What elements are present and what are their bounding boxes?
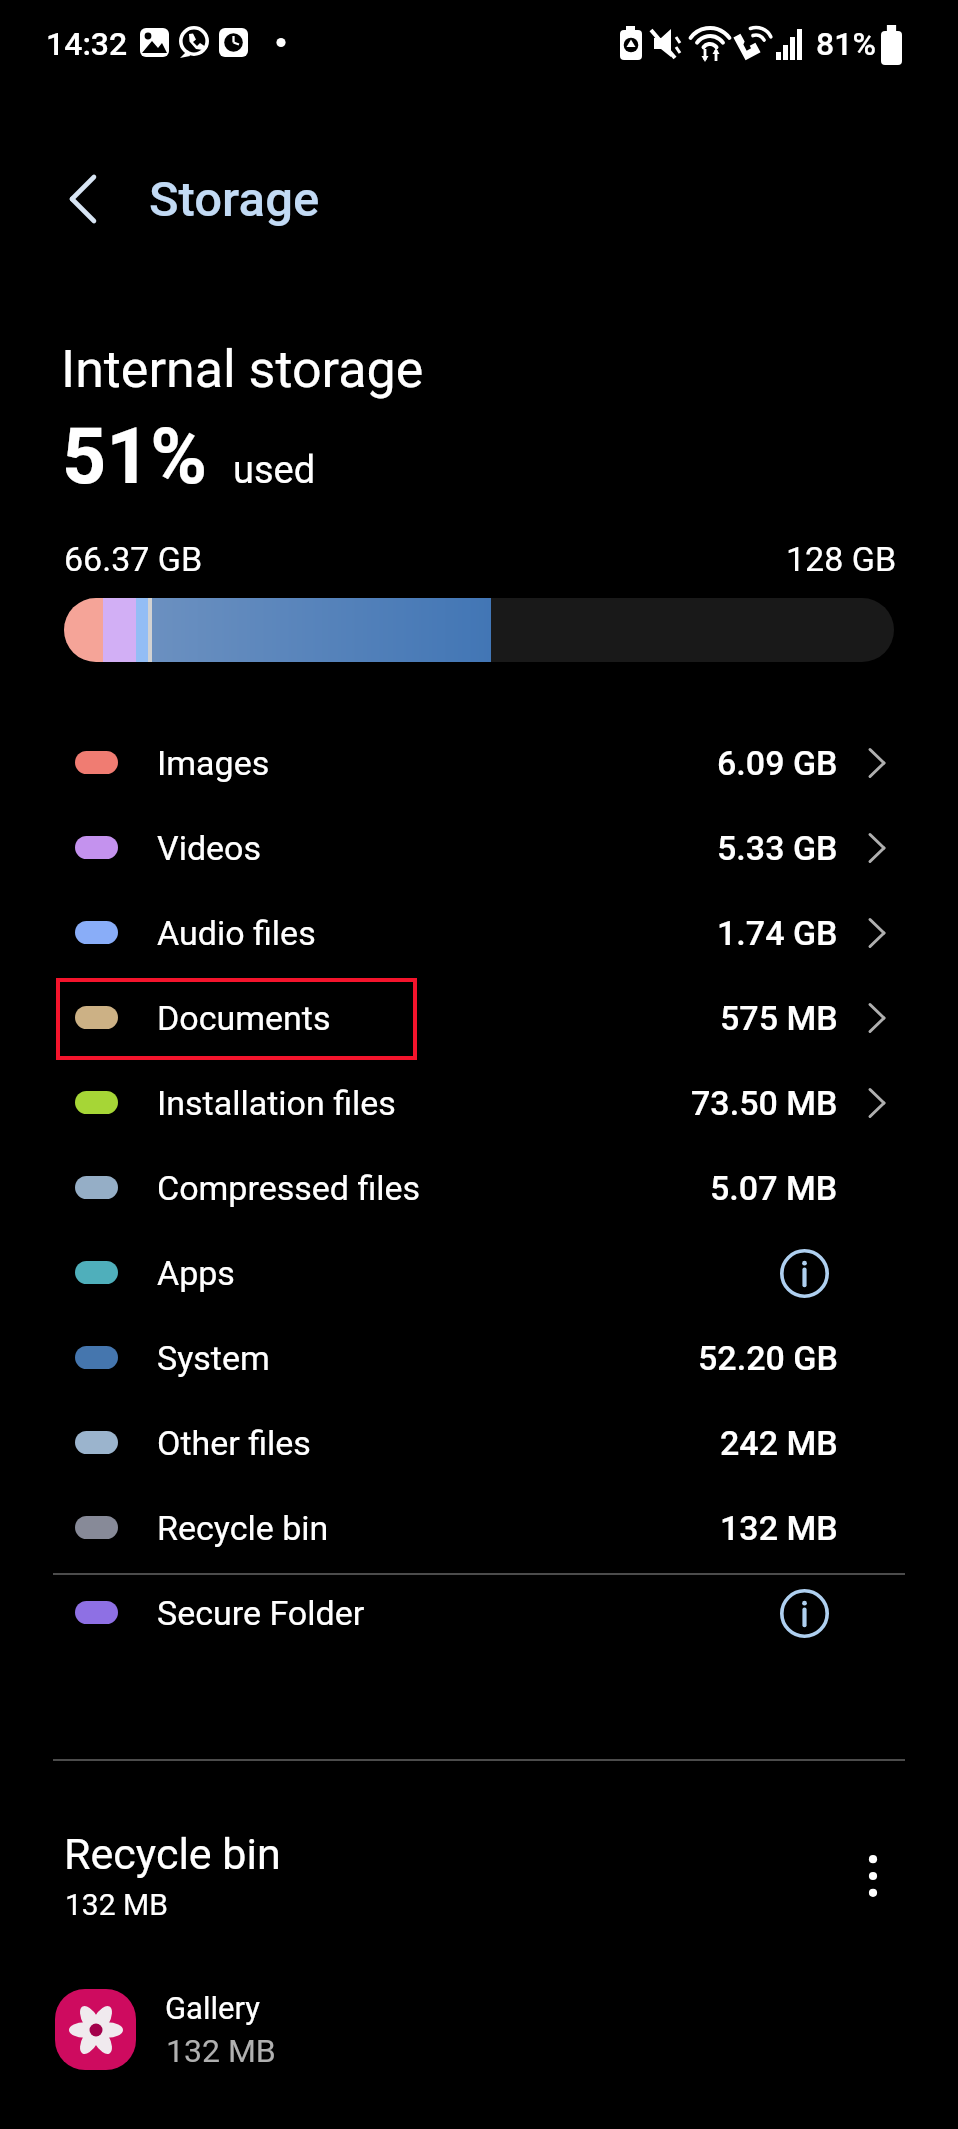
staticText: Apps [157,1253,235,1293]
staticText: Audio files [157,913,316,953]
button[interactable]: Recycle bin [0,1485,958,1570]
staticText: 73.50 MB [691,1083,838,1123]
staticText: 66.37 GB [64,539,203,579]
button[interactable]: Secure Folder [0,1570,958,1655]
staticText: 132 MB [166,2032,276,2070]
button[interactable]: Apps [0,1230,958,1315]
staticText: Internal storage [61,339,424,400]
button[interactable]: Other files [0,1400,958,1485]
staticText: 6.09 GB [717,743,838,783]
staticText: used [233,448,316,493]
button[interactable]: Audio files [0,890,958,975]
staticText: 242 MB [720,1423,838,1463]
staticText: 128 GB [786,539,897,579]
staticText: 81% [816,25,876,63]
staticText: 5.33 GB [717,828,838,868]
button[interactable]: More information about Secure Folder [773,1582,835,1644]
staticText: 1.74 GB [717,913,838,953]
button[interactable]: Documents [0,975,958,1060]
staticText: 51% [62,412,208,502]
staticText: Recycle bin [64,1829,281,1879]
button[interactable]: Gallery [55,1989,355,2070]
staticText: Recycle bin [157,1508,329,1548]
staticText: 575 MB [720,998,838,1038]
button[interactable]: Installation files [0,1060,958,1145]
staticText: Images [157,743,270,783]
button[interactable]: Images [0,720,958,805]
button[interactable]: Compressed files [0,1145,958,1230]
staticText: Videos [157,828,262,868]
staticText: Storage [149,171,320,228]
button[interactable]: System [0,1315,958,1400]
staticText: 14:32 [46,25,128,63]
button[interactable]: More information about Apps [773,1242,835,1304]
staticText: 132 MB [65,1887,168,1922]
staticText: System [157,1338,270,1378]
staticText: Installation files [157,1083,396,1123]
staticText: 52.20 GB [698,1338,838,1378]
staticText: Compressed files [157,1168,421,1208]
staticText: 5.07 MB [710,1168,838,1208]
button[interactable]: More options [837,1840,909,1912]
button[interactable]: Videos [0,805,958,890]
staticText: Other files [157,1423,311,1463]
staticText: Documents [157,998,331,1038]
staticText: 132 MB [720,1508,838,1548]
staticText: Secure Folder [157,1593,365,1633]
staticText: Gallery [165,1990,260,2026]
button[interactable]: Back [43,159,123,239]
